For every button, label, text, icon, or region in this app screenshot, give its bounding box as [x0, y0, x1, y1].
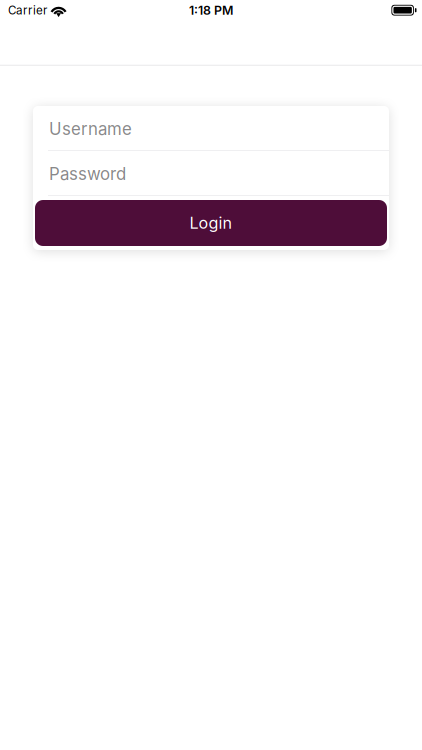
staticText: Carrier — [8, 3, 47, 17]
staticText: Login — [189, 213, 232, 233]
button[interactable]: Login — [35, 200, 387, 246]
button[interactable]: Username — [33, 106, 389, 150]
button[interactable]: Password — [33, 151, 389, 195]
staticText: Password — [49, 164, 126, 184]
staticText: Username — [49, 119, 132, 139]
staticText: 1:18 PM — [189, 3, 233, 18]
